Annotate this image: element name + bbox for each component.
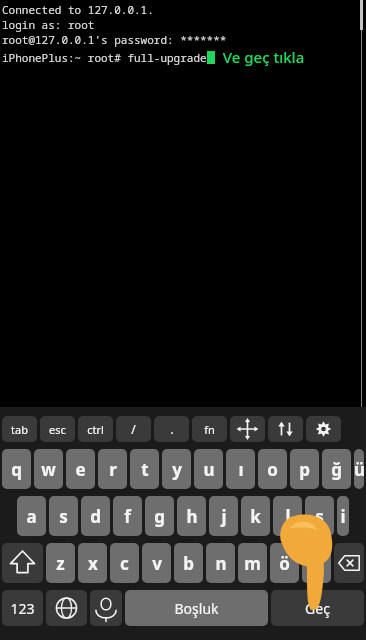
button[interactable]: ğ	[322, 449, 351, 489]
button[interactable]: b	[174, 543, 203, 583]
button[interactable]: y	[162, 449, 191, 489]
button[interactable]: g	[145, 496, 174, 536]
button[interactable]: Slash	[116, 416, 151, 442]
staticText: ş	[315, 505, 324, 528]
button[interactable]: Voice input	[90, 590, 122, 626]
button[interactable]: Move cursor	[230, 416, 265, 442]
staticText: ı	[238, 458, 244, 481]
staticText: v	[152, 552, 162, 575]
staticText: ü	[354, 458, 364, 481]
staticText: root@127.0.0.1's password: *******	[2, 32, 227, 47]
staticText: 123	[10, 599, 35, 618]
button[interactable]: ç	[302, 543, 331, 583]
button[interactable]: Boşluk	[125, 590, 268, 626]
button[interactable]: Period	[154, 416, 189, 442]
staticText: d	[90, 505, 101, 528]
staticText: n	[215, 552, 227, 575]
staticText: e	[75, 458, 86, 481]
button[interactable]: ü	[354, 449, 364, 489]
button[interactable]: Geç	[271, 590, 364, 626]
button[interactable]: t	[130, 449, 159, 489]
staticText: f	[124, 505, 131, 528]
button[interactable]: Tab	[2, 416, 37, 442]
button[interactable]: p	[290, 449, 319, 489]
button[interactable]: ı	[226, 449, 255, 489]
staticText: r	[109, 458, 117, 481]
staticText: Connected to 127.0.0.1.	[2, 2, 154, 17]
staticText: z	[56, 552, 65, 575]
staticText: g	[154, 505, 165, 528]
staticText: fn	[204, 422, 215, 437]
button[interactable]: h	[177, 496, 206, 536]
staticText: h	[186, 505, 198, 528]
staticText: s	[59, 505, 68, 528]
staticText: l	[285, 505, 291, 528]
button[interactable]: j	[209, 496, 238, 536]
button[interactable]: n	[206, 543, 235, 583]
button[interactable]: Shift	[2, 543, 43, 583]
staticText: /	[131, 421, 136, 437]
button[interactable]: x	[78, 543, 107, 583]
button[interactable]: Backspace	[334, 543, 364, 583]
button[interactable]: a	[17, 496, 46, 536]
button[interactable]: Settings	[306, 416, 341, 442]
staticText: p	[299, 458, 310, 481]
staticText: c	[120, 552, 129, 575]
button[interactable]: l	[273, 496, 302, 536]
staticText: ğ	[331, 458, 342, 481]
staticText: b	[183, 552, 194, 575]
button[interactable]: v	[142, 543, 171, 583]
staticText: i	[340, 505, 346, 528]
button[interactable]: m	[238, 543, 267, 583]
button[interactable]: e	[66, 449, 95, 489]
staticText: iPhonePlus:~ root# full-upgrade	[2, 50, 207, 65]
staticText: tab	[11, 422, 28, 437]
button[interactable]: r	[98, 449, 127, 489]
staticText: .	[170, 421, 174, 437]
button[interactable]: w	[34, 449, 63, 489]
staticText: k	[250, 505, 261, 528]
button[interactable]: Numbers	[2, 590, 43, 626]
button[interactable]: ş	[305, 496, 334, 536]
staticText: q	[11, 458, 22, 481]
staticText: ctrl	[87, 422, 104, 437]
staticText: esc	[49, 422, 66, 437]
button[interactable]: o	[258, 449, 287, 489]
button[interactable]: ö	[270, 543, 299, 583]
staticText: login as: root	[2, 17, 95, 32]
button[interactable]: Function	[192, 416, 227, 442]
button[interactable]: s	[49, 496, 78, 536]
button[interactable]: c	[110, 543, 139, 583]
button[interactable]: Scroll	[268, 416, 303, 442]
button[interactable]: u	[194, 449, 223, 489]
button[interactable]: i	[337, 496, 349, 536]
staticText: Geç	[305, 599, 330, 618]
button[interactable]: k	[241, 496, 270, 536]
button[interactable]: Escape	[40, 416, 75, 442]
button[interactable]: z	[46, 543, 75, 583]
staticText: u	[203, 458, 215, 481]
button[interactable]: Change language	[46, 590, 87, 626]
button[interactable]: f	[113, 496, 142, 536]
button[interactable]: q	[2, 449, 31, 489]
staticText: y	[172, 458, 182, 481]
staticText: Boşluk	[174, 599, 219, 618]
staticText: ö	[279, 552, 290, 575]
staticText: x	[88, 552, 98, 575]
button[interactable]: Control	[78, 416, 113, 442]
staticText: w	[41, 458, 56, 481]
staticText: Ve geç tıkla	[215, 47, 305, 67]
staticText: a	[26, 505, 37, 528]
staticText: o	[267, 458, 278, 481]
staticText: t	[141, 458, 149, 481]
staticText: j	[221, 505, 227, 528]
staticText: m	[244, 552, 261, 575]
button[interactable]: d	[81, 496, 110, 536]
